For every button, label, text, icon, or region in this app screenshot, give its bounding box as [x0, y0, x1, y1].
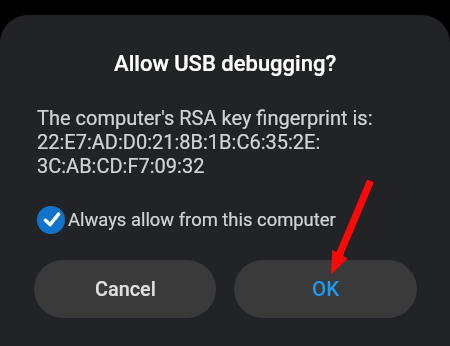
button[interactable]: Always allow from this computer [37, 203, 336, 236]
button[interactable]: Cancel [34, 260, 216, 318]
staticText: The computer's RSA key fingerprint is: 2… [37, 106, 373, 178]
button[interactable]: OK [234, 260, 417, 318]
staticText: Cancel [95, 278, 156, 301]
staticText: Allow USB debugging? [114, 51, 337, 77]
other: Annotation arrow [0, 0, 450, 346]
staticText: Always allow from this computer [68, 209, 336, 231]
staticText: OK [312, 277, 340, 301]
